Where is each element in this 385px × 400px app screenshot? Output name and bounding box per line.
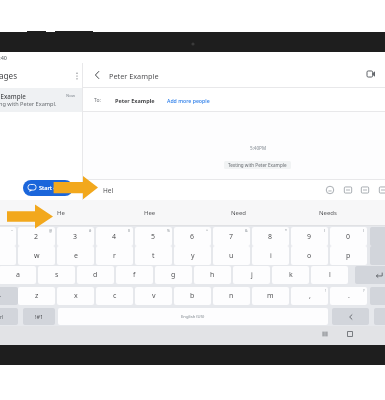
button[interactable]: Needs: [283, 200, 372, 226]
button[interactable]: k: [272, 266, 309, 284]
staticText: ): [363, 228, 365, 233]
button[interactable]: Hee: [105, 200, 194, 226]
button[interactable]: y: [174, 246, 211, 265]
button[interactable]: .: [330, 287, 367, 305]
staticText: To:: [94, 97, 101, 104]
staticText: He: [57, 209, 65, 217]
button[interactable]: 8: [252, 227, 289, 246]
staticText: 9: [307, 232, 312, 242]
staticText: g: [171, 270, 176, 280]
button[interactable]: e: [57, 246, 94, 265]
staticText: s: [55, 270, 59, 280]
button[interactable]: p: [330, 246, 367, 265]
staticText: ctrl: [0, 313, 4, 320]
button[interactable]: c: [96, 287, 133, 305]
staticText: 5: [151, 232, 156, 242]
button[interactable]: Need: [194, 200, 283, 226]
button[interactable]: 0: [330, 227, 367, 246]
button[interactable]: m: [252, 287, 289, 305]
button[interactable]: n: [213, 287, 250, 305]
staticText: Need: [231, 209, 247, 217]
button[interactable]: z: [18, 287, 55, 305]
button[interactable]: u: [213, 246, 250, 265]
staticText: f: [133, 270, 136, 280]
staticText: 4: [112, 232, 117, 242]
button[interactable]: GIF: [339, 181, 356, 198]
staticText: 6: [190, 232, 195, 242]
button[interactable]: Video call: [361, 64, 381, 84]
staticText: r: [113, 251, 116, 261]
button[interactable]: 2: [18, 227, 55, 246]
button[interactable]: j: [233, 266, 270, 284]
button[interactable]: d: [77, 266, 114, 284]
staticText: Start chat: [39, 184, 65, 192]
button[interactable]: Enter: [355, 266, 385, 284]
button[interactable]: Emoji: [321, 181, 338, 198]
button[interactable]: Shift: [0, 287, 18, 305]
button[interactable]: ,: [291, 287, 328, 305]
button[interactable]: 7: [213, 227, 250, 246]
button[interactable]: w: [18, 246, 55, 265]
staticText: %: [167, 228, 170, 233]
button[interactable]: 5: [135, 227, 172, 246]
button[interactable]: More options: [70, 69, 83, 82]
staticText: !#1: [35, 313, 44, 320]
staticText: 5:40: [0, 54, 7, 61]
button[interactable]: t: [135, 246, 172, 265]
button[interactable]: g: [155, 266, 192, 284]
button[interactable]: a: [0, 266, 36, 284]
staticText: t: [152, 251, 155, 261]
staticText: Texting with Peter Example: [228, 162, 287, 168]
staticText: ~: [11, 228, 14, 233]
staticText: 0: [346, 232, 351, 242]
button[interactable]: i: [252, 246, 289, 265]
button[interactable]: Home: [342, 326, 358, 342]
staticText: c: [113, 291, 117, 301]
button[interactable]: 6: [174, 227, 211, 246]
staticText: *: [285, 228, 287, 233]
button[interactable]: Backspace: [332, 308, 369, 325]
staticText: @: [49, 228, 53, 233]
button[interactable]: Add more people: [167, 97, 210, 104]
staticText: ,: [309, 291, 311, 301]
button[interactable]: He: [16, 200, 105, 226]
staticText: k: [289, 270, 293, 280]
button[interactable]: v: [135, 287, 172, 305]
button[interactable]: r: [96, 246, 133, 265]
button[interactable]: Control: [0, 308, 18, 325]
button[interactable]: Gallery: [374, 181, 385, 198]
button[interactable]: b: [174, 287, 211, 305]
button[interactable]: h: [194, 266, 231, 284]
button[interactable]: Messages: [0, 63, 82, 88]
button[interactable]: Recent apps: [317, 326, 333, 342]
button[interactable]: Back: [87, 65, 107, 85]
button[interactable]: s: [38, 266, 75, 284]
staticText: d: [93, 270, 98, 280]
button[interactable]: 4: [96, 227, 133, 246]
staticText: Needs: [319, 209, 337, 217]
button[interactable]: 9: [291, 227, 328, 246]
button[interactable]: o: [291, 246, 328, 265]
button[interactable]: l: [311, 266, 348, 284]
button[interactable]: Sticker: [356, 181, 373, 198]
button[interactable]: English (US): [58, 308, 328, 325]
staticText: y: [191, 251, 195, 261]
button[interactable]: Peter Example: [0, 88, 82, 112]
staticText: x: [74, 291, 78, 301]
staticText: ?: [363, 288, 365, 293]
button[interactable]: Start chat: [23, 180, 73, 196]
staticText: b: [190, 291, 195, 301]
button[interactable]: x: [57, 287, 94, 305]
staticText: .: [348, 291, 350, 301]
staticText: Messages: [0, 70, 18, 81]
button[interactable]: !#1: [23, 308, 55, 325]
button[interactable]: 3: [57, 227, 94, 246]
staticText: #: [89, 228, 92, 233]
button[interactable]: f: [116, 266, 153, 284]
